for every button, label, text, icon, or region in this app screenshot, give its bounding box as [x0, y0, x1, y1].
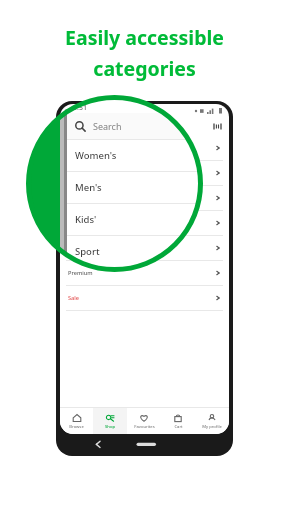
button[interactable]: Men's: [67, 172, 199, 203]
button[interactable]: Women's: [60, 136, 229, 160]
staticText: Men's: [68, 169, 84, 177]
button[interactable]: Men's: [60, 161, 229, 185]
staticText: Women's: [75, 149, 117, 162]
button[interactable]: Women's: [67, 140, 199, 171]
button[interactable]: My profile: [195, 408, 229, 434]
button[interactable]: Search: [67, 113, 199, 139]
staticText: Kids': [75, 213, 97, 226]
button[interactable]: Shop: [93, 408, 127, 434]
staticText: Handbags: [68, 244, 96, 252]
staticText: Easily accessible: [65, 24, 224, 51]
button[interactable]: Premium: [60, 261, 229, 285]
staticText: Men's: [75, 181, 102, 194]
staticText: 08:51: [69, 103, 87, 113]
staticText: My profile: [202, 424, 222, 430]
button[interactable]: Browse: [60, 408, 93, 434]
staticText: Premium: [68, 269, 93, 277]
staticText: Search: [93, 120, 122, 132]
staticText: categories: [93, 55, 196, 82]
button[interactable]: Sale: [60, 286, 229, 310]
button[interactable]: Kids': [67, 204, 199, 235]
staticText: Sale: [68, 294, 79, 302]
button[interactable]: Handbags: [60, 236, 229, 260]
button[interactable]: Sport: [67, 236, 199, 267]
button[interactable]: Favourites: [127, 408, 161, 434]
staticText: Browse: [69, 424, 84, 430]
button[interactable]: Sport: [60, 211, 229, 235]
staticText: Sport: [75, 245, 100, 258]
button[interactable]: Cart: [161, 408, 195, 434]
other: Search: [75, 121, 86, 132]
staticText: Sport: [68, 219, 83, 227]
staticText: 08:51: [65, 107, 80, 114]
other: Scan barcode: [213, 122, 222, 131]
staticText: Cart: [174, 424, 183, 430]
button[interactable]: Kids': [60, 186, 229, 210]
staticText: Favourites: [134, 424, 155, 430]
staticText: Shop: [105, 424, 115, 430]
